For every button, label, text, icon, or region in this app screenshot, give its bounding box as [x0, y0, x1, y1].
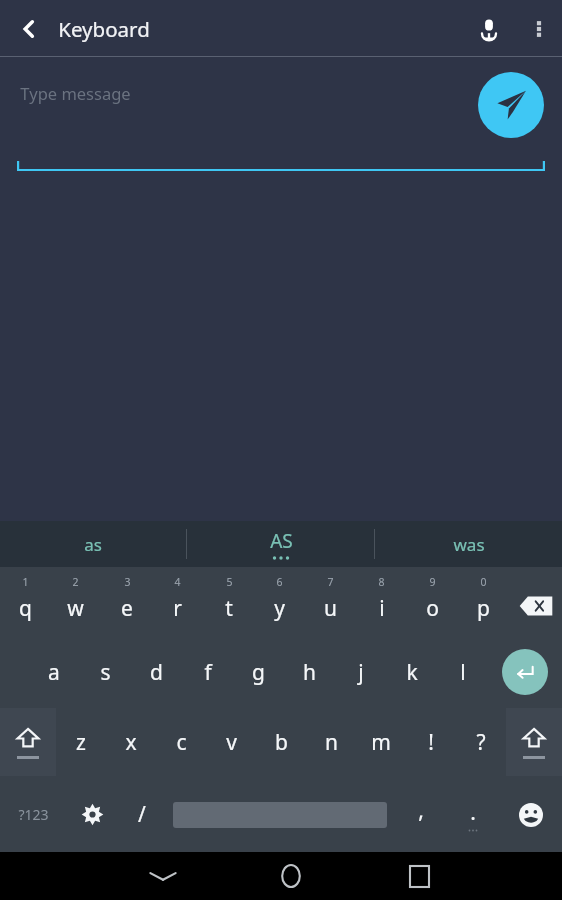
staticText: q [19, 594, 32, 623]
staticText: m [371, 728, 391, 757]
staticText: c [176, 728, 187, 757]
button[interactable]: Settings [66, 777, 118, 852]
button[interactable]: ?123 [0, 777, 66, 852]
button[interactable]: 2 [50, 567, 101, 637]
button[interactable]: h [284, 637, 335, 707]
button[interactable]: AS [187, 521, 374, 567]
button[interactable]: Voice input [462, 0, 516, 57]
button[interactable]: Space [165, 777, 395, 852]
staticText: . [470, 798, 476, 827]
button[interactable]: k [386, 637, 437, 707]
staticText: z [76, 728, 86, 757]
button[interactable]: More options [516, 0, 562, 57]
staticText: 7 [327, 575, 334, 589]
button[interactable]: 4 [152, 567, 203, 637]
staticText: a [48, 658, 60, 687]
staticText: l [460, 658, 466, 687]
staticText: Keyboard [58, 15, 150, 43]
staticText: o [426, 594, 439, 623]
staticText: Type message [20, 82, 131, 104]
staticText: x [125, 728, 137, 757]
button[interactable]: a [28, 637, 80, 707]
button[interactable]: z [56, 707, 106, 777]
staticText: ?123 [18, 805, 49, 824]
button[interactable]: was [375, 521, 562, 567]
button[interactable]: Recent apps [355, 852, 483, 900]
button[interactable]: s [80, 637, 131, 707]
button[interactable]: ! [406, 707, 456, 777]
button[interactable]: 5 [203, 567, 254, 637]
staticText: was [453, 533, 485, 556]
button[interactable]: 9 [407, 567, 458, 637]
staticText: k [406, 658, 418, 687]
staticText: 0 [480, 575, 487, 589]
staticText: 1 [22, 575, 29, 589]
staticText: , [418, 796, 424, 825]
staticText: / [138, 800, 146, 829]
staticText: t [225, 594, 233, 623]
staticText: 2 [72, 575, 79, 589]
button[interactable]: Home [227, 852, 355, 900]
button[interactable]: Back [0, 0, 58, 57]
button[interactable]: 1 [0, 567, 50, 637]
staticText: n [325, 728, 338, 757]
button[interactable]: Shift [0, 708, 56, 776]
staticText: i [379, 594, 385, 623]
button[interactable]: Emoji [499, 777, 562, 852]
button[interactable]: v [206, 707, 256, 777]
button[interactable]: n [306, 707, 356, 777]
button[interactable]: , [395, 777, 447, 852]
button[interactable]: 6 [254, 567, 305, 637]
button[interactable]: Shift [506, 708, 562, 776]
staticText: s [100, 658, 111, 687]
button[interactable]: d [131, 637, 182, 707]
staticText: j [358, 658, 364, 687]
button[interactable]: g [233, 637, 284, 707]
staticText: v [226, 728, 237, 757]
staticText: g [252, 658, 265, 687]
button[interactable]: Send [478, 72, 544, 138]
staticText: u [324, 594, 337, 623]
button[interactable]: j [335, 637, 386, 707]
button[interactable]: Enter [488, 637, 562, 707]
button[interactable]: f [182, 637, 233, 707]
button[interactable]: / [118, 777, 165, 852]
staticText: 9 [429, 575, 436, 589]
staticText: f [204, 658, 212, 687]
button[interactable]: m [356, 707, 406, 777]
staticText: h [303, 658, 316, 687]
staticText: as [84, 533, 102, 556]
staticText: p [477, 594, 490, 623]
staticText: ? [476, 728, 486, 757]
button[interactable]: b [256, 707, 306, 777]
staticText: 4 [174, 575, 181, 589]
button[interactable]: Backspace [509, 567, 562, 637]
staticText: d [150, 658, 163, 687]
staticText: y [274, 594, 285, 623]
staticText: AS [270, 528, 293, 554]
staticText: 6 [276, 575, 283, 589]
button[interactable]: Hide keyboard [99, 852, 227, 900]
button[interactable]: 3 [101, 567, 152, 637]
staticText: 5 [226, 575, 233, 589]
staticText: 3 [124, 575, 131, 589]
button[interactable]: ? [456, 707, 506, 777]
button[interactable]: c [156, 707, 206, 777]
staticText: 8 [378, 575, 385, 589]
button[interactable]: x [106, 707, 156, 777]
button[interactable]: 7 [305, 567, 356, 637]
button[interactable]: 0 [458, 567, 509, 637]
staticText: r [173, 594, 182, 623]
button[interactable]: l [437, 637, 488, 707]
button[interactable]: as [0, 521, 186, 567]
staticText: ! [428, 728, 434, 757]
button[interactable]: . [447, 777, 499, 852]
staticText: w [67, 594, 84, 623]
staticText: e [121, 594, 133, 623]
staticText: b [275, 728, 288, 757]
button[interactable]: 8 [356, 567, 407, 637]
